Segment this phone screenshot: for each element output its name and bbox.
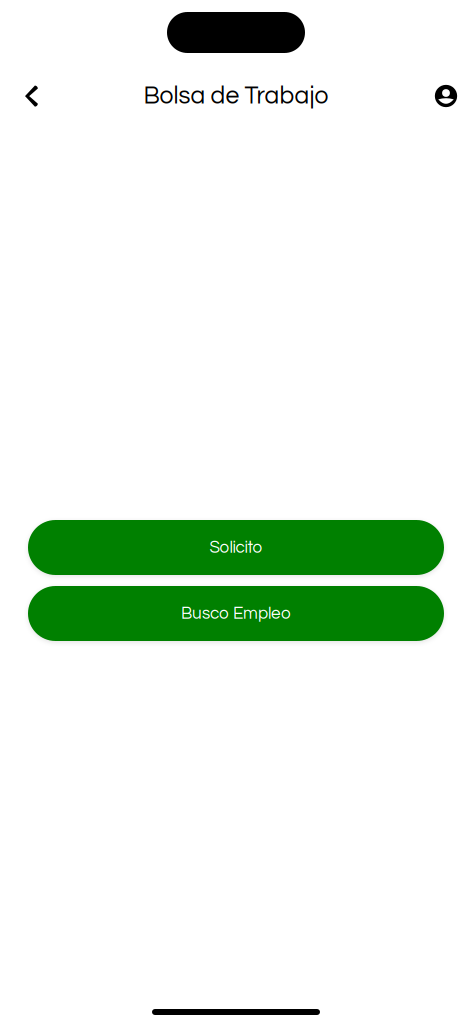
button[interactable]: Solicito: [28, 520, 444, 575]
staticText: Solicito: [209, 539, 262, 556]
staticText: Bolsa de Trabajo: [143, 83, 328, 109]
button[interactable]: Account: [424, 74, 468, 118]
button[interactable]: Busco Empleo: [28, 586, 444, 641]
staticText: Busco Empleo: [181, 605, 291, 622]
button[interactable]: Back: [10, 74, 54, 118]
